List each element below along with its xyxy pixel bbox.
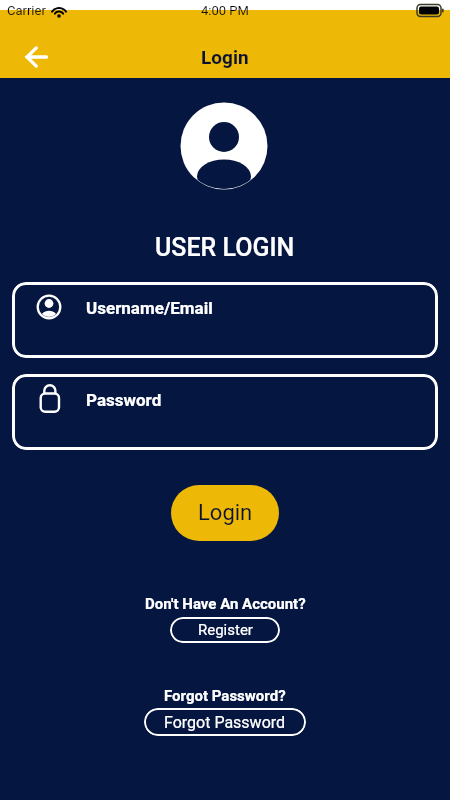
staticText: 4:00 PM	[201, 3, 249, 18]
staticText: Login	[198, 500, 253, 526]
button[interactable]: Username/Email	[12, 282, 438, 358]
staticText: Username/Email	[86, 298, 213, 318]
button[interactable]	[16, 40, 56, 74]
staticText: Forgot Password	[164, 713, 286, 732]
staticText: USER LOGIN	[155, 233, 295, 262]
button[interactable]: Login	[171, 485, 279, 541]
button[interactable]: Password	[12, 374, 438, 450]
staticText: Register	[198, 621, 253, 639]
staticText: Forgot Password?	[164, 687, 286, 705]
staticText: Carrier	[7, 3, 46, 18]
button[interactable]: Forgot Password	[144, 708, 306, 736]
staticText: Don't Have An Account?	[145, 595, 306, 613]
button[interactable]: Register	[170, 617, 280, 643]
staticText: Login	[201, 46, 249, 68]
staticText: Password	[86, 390, 162, 410]
